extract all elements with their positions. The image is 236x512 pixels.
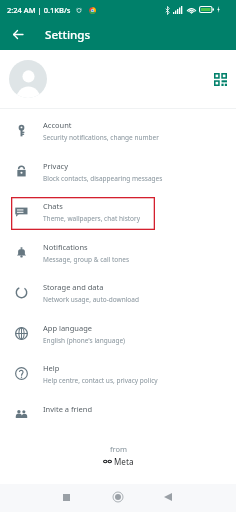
staticText: Storage and data	[43, 282, 104, 292]
button[interactable]: Chats	[0, 192, 236, 233]
button[interactable]: QR code	[210, 69, 230, 89]
button[interactable]: Privacy	[0, 152, 236, 193]
staticText: Invite a friend	[43, 404, 93, 414]
staticText: Message, group & call tones	[43, 255, 130, 264]
button[interactable]: App language	[0, 314, 236, 355]
button[interactable]: QR code	[0, 50, 236, 108]
staticText: Help	[43, 363, 60, 373]
button[interactable]: Back	[6, 22, 30, 46]
staticText: Block contacts, disappearing messages	[43, 174, 163, 183]
staticText: Privacy	[43, 161, 69, 171]
staticText: Notifications	[43, 242, 88, 252]
button[interactable]: Help	[0, 354, 236, 395]
staticText: Theme, wallpapers, chat history	[43, 214, 141, 223]
button[interactable]: Recent apps	[53, 484, 79, 510]
button[interactable]: Storage and data	[0, 273, 236, 314]
staticText: App language	[43, 323, 93, 333]
button[interactable]: Home	[105, 484, 131, 510]
staticText: Security notifications, change number	[43, 133, 159, 142]
button[interactable]: Invite a friend	[0, 395, 236, 436]
button[interactable]: Notifications	[0, 233, 236, 274]
button[interactable]: Back	[155, 484, 181, 510]
staticText: Help centre, contact us, privacy policy	[43, 376, 158, 385]
staticText: Settings	[45, 27, 91, 43]
staticText: English (phone's language)	[43, 336, 126, 345]
staticText: Chats	[43, 201, 63, 211]
staticText: Account	[43, 120, 72, 130]
button[interactable]: Account	[0, 111, 236, 152]
staticText: 2:24 AM | 0.1KB/s	[7, 5, 71, 15]
staticText: Network usage, auto-download	[43, 295, 139, 304]
staticText: Meta	[114, 456, 134, 467]
staticText: from	[110, 444, 128, 454]
